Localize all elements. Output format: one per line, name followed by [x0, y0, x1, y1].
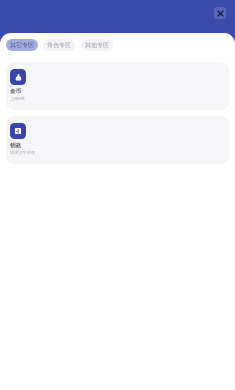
button[interactable]: 其它专区 [6, 39, 38, 51]
staticText: 描述文字说明 [10, 150, 36, 155]
staticText: 其他专区 [85, 41, 109, 49]
staticText: 上限8笔 [10, 96, 25, 102]
staticText: 金币 [10, 88, 21, 95]
staticText: 角色专区 [47, 41, 71, 49]
button[interactable]: 金币 [6, 62, 229, 110]
button[interactable]: 角色专区 [43, 39, 75, 51]
button[interactable]: 钥匙 [6, 116, 229, 164]
staticText: 钥匙 [10, 142, 21, 149]
staticText: 其它专区 [10, 41, 34, 49]
button[interactable]: Close [214, 7, 226, 19]
button[interactable]: 其他专区 [81, 39, 113, 51]
